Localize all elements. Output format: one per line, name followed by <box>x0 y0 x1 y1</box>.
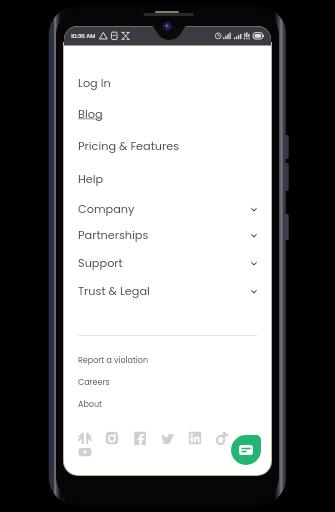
button[interactable]: Open chat <box>231 435 261 465</box>
button[interactable]: Tumblr <box>78 431 92 445</box>
button[interactable]: Partnerships <box>64 222 271 248</box>
button[interactable]: TikTok <box>215 431 229 445</box>
staticText: Help <box>78 171 104 187</box>
staticText: Pricing & Features <box>78 138 180 154</box>
button[interactable]: Blog <box>64 101 271 127</box>
button[interactable]: Instagram <box>105 431 119 445</box>
button[interactable]: Log In <box>64 70 271 96</box>
button[interactable]: YouTube <box>78 445 92 459</box>
staticText: Log In <box>78 75 111 91</box>
button[interactable]: Careers <box>64 372 271 392</box>
staticText: Support <box>78 255 123 271</box>
button[interactable]: About <box>64 394 271 414</box>
staticText: Careers <box>78 377 110 388</box>
staticText: Report a violation <box>78 355 148 366</box>
staticText: Blog <box>78 106 103 122</box>
button[interactable]: Facebook <box>133 431 147 445</box>
button[interactable]: Company <box>64 196 271 222</box>
staticText: 10:36 AM <box>71 32 96 40</box>
staticText: Partnerships <box>78 227 149 243</box>
staticText: Company <box>78 201 135 217</box>
button[interactable]: Report a violation <box>64 350 271 370</box>
button[interactable]: LinkedIn <box>188 431 202 445</box>
button[interactable]: Twitter <box>161 431 175 445</box>
button[interactable]: Support <box>64 250 271 276</box>
button[interactable]: Pricing & Features <box>64 133 271 159</box>
staticText: About <box>78 399 102 410</box>
button[interactable]: Help <box>64 166 271 192</box>
staticText: Trust & Legal <box>78 283 150 299</box>
button[interactable]: Trust & Legal <box>64 278 271 304</box>
